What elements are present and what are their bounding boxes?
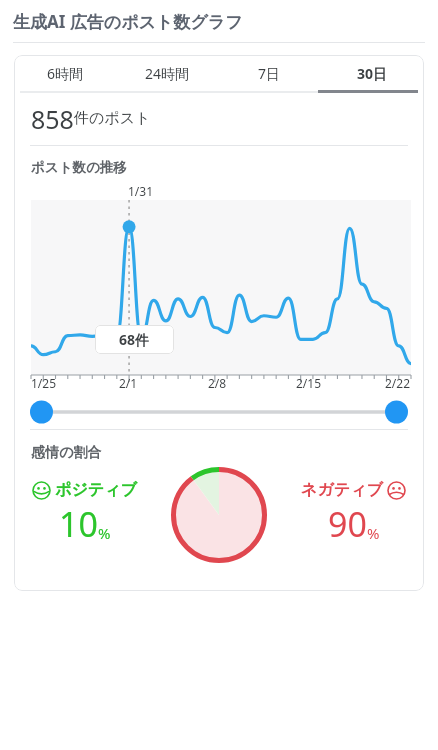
staticText: ポジティブ	[55, 480, 137, 500]
button[interactable]: 6時間	[14, 55, 116, 91]
staticText: %	[367, 523, 380, 543]
button[interactable]: 24時間	[116, 55, 218, 91]
staticText: 1/31	[128, 183, 154, 199]
staticText: 24時間	[145, 64, 190, 83]
staticText: 10	[59, 501, 98, 547]
staticText: 858	[31, 102, 74, 136]
staticText: 2/1	[119, 375, 138, 391]
staticText: 30日	[357, 64, 388, 83]
staticText: ポスト数の推移	[31, 159, 127, 176]
staticText: 2/22	[385, 375, 411, 391]
staticText: 感情の割合	[31, 444, 102, 462]
button[interactable]: 7日	[218, 55, 321, 91]
staticText: 1/25	[31, 375, 57, 391]
staticText: 68件	[119, 330, 150, 349]
staticText: 6時間	[47, 64, 84, 83]
button[interactable]: Date range slider	[28, 395, 410, 429]
button[interactable]: 30日	[321, 55, 424, 91]
staticText: 2/15	[296, 375, 322, 391]
staticText: 7日	[258, 64, 281, 83]
staticText: %	[98, 523, 111, 543]
staticText: 90	[328, 501, 367, 547]
staticText: 生成AI 広告のポスト数グラフ	[13, 10, 243, 33]
button[interactable]: ネガティブ	[301, 480, 406, 547]
button[interactable]: ポジティブ	[32, 480, 137, 547]
staticText: ネガティブ	[301, 480, 383, 500]
staticText: 件のポスト	[74, 109, 151, 128]
staticText: 2/8	[208, 375, 227, 391]
